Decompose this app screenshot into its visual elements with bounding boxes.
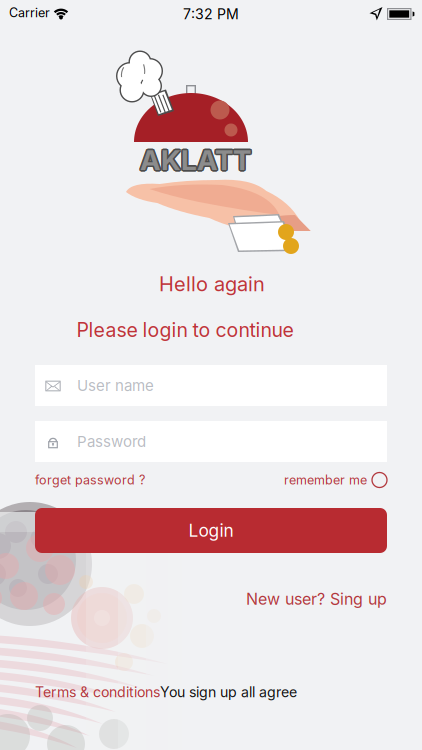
staticText: Password: [77, 432, 146, 451]
staticText: New user? Sing up: [246, 589, 387, 609]
staticText: Terms & conditions: [35, 683, 160, 700]
staticText: AKLATT: [138, 143, 249, 177]
button[interactable]: New user? Sing up: [35, 588, 387, 610]
staticText: You sign up all agree: [160, 683, 297, 700]
staticText: forget password ?: [35, 472, 145, 488]
staticText: AKLATT: [139, 142, 250, 176]
button[interactable]: forget password ?: [35, 470, 145, 490]
staticText: Carrier: [9, 5, 50, 20]
staticText: Hello again: [159, 272, 265, 296]
staticText: Please login to continue: [76, 318, 293, 342]
staticText: 7:32 PM: [183, 5, 239, 22]
staticText: AKLATT: [140, 143, 251, 177]
staticText: AKLATT: [141, 142, 252, 176]
staticText: AKLATT: [141, 144, 252, 178]
staticText: remember me: [284, 472, 367, 488]
staticText: Login: [188, 520, 233, 541]
button[interactable]: remember me: [284, 470, 387, 490]
staticText: AKLATT: [142, 143, 253, 177]
staticText: User name: [77, 376, 154, 395]
staticText: AKLATT: [140, 145, 251, 178]
button[interactable]: Terms & conditions: [35, 682, 160, 702]
button[interactable]: Login: [35, 508, 387, 553]
staticText: AKLATT: [140, 141, 251, 175]
staticText: AKLATT: [139, 144, 250, 178]
